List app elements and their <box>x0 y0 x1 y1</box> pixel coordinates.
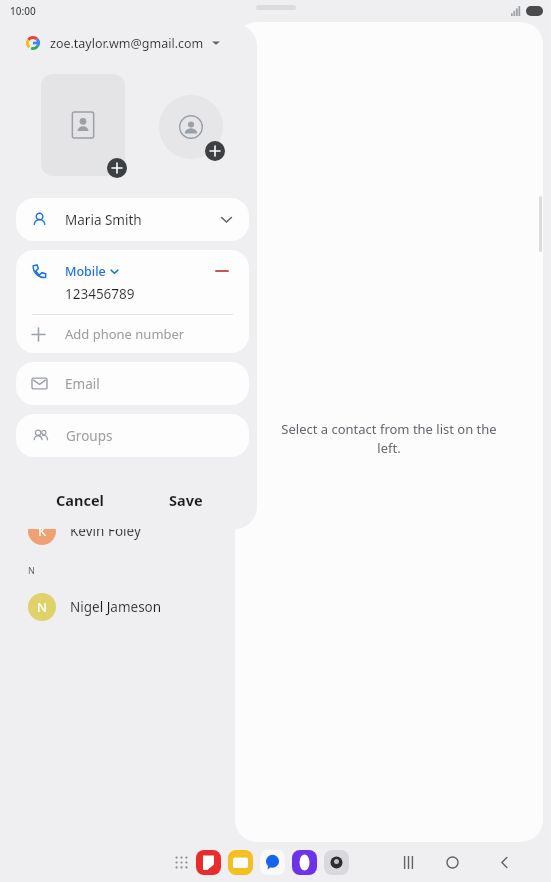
staticText: Add phone number <box>65 325 185 343</box>
button[interactable]: Mobile <box>65 263 119 280</box>
button[interactable]: Add card photo <box>107 158 127 178</box>
button[interactable]: App <box>292 850 317 875</box>
button[interactable]: zoe.taylor.wm@gmail.com <box>8 24 257 62</box>
button[interactable]: Cancel <box>50 484 110 516</box>
staticText: 123456789 <box>65 285 135 303</box>
staticText: Email <box>65 375 100 393</box>
staticText: Mobile <box>65 263 106 280</box>
staticText: Cancel <box>56 490 104 510</box>
button[interactable]: Add profile photo <box>205 141 225 161</box>
button[interactable]: App <box>196 850 221 875</box>
button[interactable]: Email <box>16 362 249 405</box>
button[interactable]: Maria Smith <box>16 198 249 241</box>
button[interactable]: Remove phone number <box>211 260 233 282</box>
button[interactable]: Recents <box>393 847 423 877</box>
staticText: Kevin Foley <box>70 522 141 540</box>
button[interactable]: Groups <box>16 414 249 457</box>
staticText: Nigel Jameson <box>70 598 162 616</box>
button[interactable]: Home <box>437 847 467 877</box>
button[interactable]: K <box>0 512 228 550</box>
staticText: N <box>28 564 35 576</box>
button[interactable]: App <box>228 850 253 875</box>
staticText: Maria Smith <box>65 211 142 229</box>
staticText: K <box>38 522 47 540</box>
button[interactable]: Add contact card photo <box>41 74 125 176</box>
staticText: Select a contact from the list on the le… <box>281 420 497 457</box>
staticText: 10:00 <box>10 4 36 18</box>
button[interactable]: Save <box>163 484 209 516</box>
staticText: zoe.taylor.wm@gmail.com <box>50 35 204 52</box>
button[interactable]: All apps <box>170 851 192 873</box>
staticText: N <box>37 598 47 616</box>
button[interactable]: Add profile photo <box>159 95 223 159</box>
button[interactable]: N <box>0 588 228 626</box>
button[interactable]: App <box>260 850 285 875</box>
button[interactable]: App <box>324 850 349 875</box>
button[interactable]: Back <box>489 847 519 877</box>
staticText: Save <box>169 490 203 510</box>
button[interactable]: Add phone number <box>16 315 249 353</box>
staticText: Groups <box>66 427 113 445</box>
